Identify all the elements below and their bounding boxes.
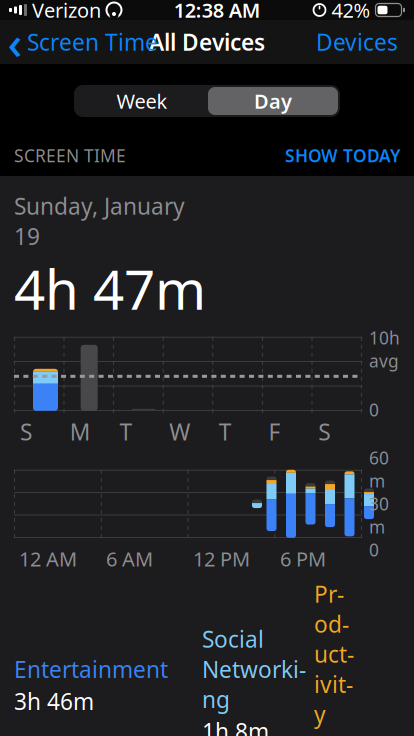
staticText: 4h 47m (14, 252, 206, 325)
staticText: SCREEN TIME (14, 144, 126, 167)
staticText: Sunday, January 19 (14, 191, 185, 251)
staticText: T (219, 417, 232, 447)
staticText: Devices (316, 27, 398, 57)
staticText: Entertainment (14, 654, 168, 684)
staticText: 60m (369, 446, 389, 492)
staticText: Social Networking (202, 624, 306, 714)
staticText: Verizon (32, 0, 101, 23)
staticText: Screen Time (27, 27, 158, 57)
button[interactable]: Week (76, 87, 208, 115)
staticText: Day (254, 88, 292, 114)
staticText: M (70, 417, 91, 447)
button[interactable]: SHOW TODAY (285, 144, 400, 167)
staticText: 6 PM (280, 545, 326, 572)
staticText: avg (369, 349, 399, 372)
staticText: SHOW TODAY (285, 144, 400, 167)
staticText: Week (116, 88, 167, 114)
staticText: 12 AM (19, 545, 77, 572)
staticText: Productivity (314, 579, 354, 729)
staticText: 0 (369, 538, 379, 561)
button[interactable]: Devices (316, 18, 414, 66)
staticText: F (269, 417, 281, 447)
staticText: All Devices (149, 27, 265, 57)
staticText: 3h 46m (14, 686, 94, 716)
staticText: 12:38 AM (174, 0, 261, 23)
staticText: S (20, 417, 32, 447)
button[interactable]: Day (208, 87, 338, 115)
staticText: 30m (369, 492, 389, 538)
staticText: 6 AM (106, 545, 153, 572)
staticText: S (318, 417, 330, 447)
staticText: T (119, 417, 132, 447)
staticText: W (169, 417, 190, 447)
staticText: 10h (369, 326, 400, 349)
button[interactable]: ‹ (0, 18, 158, 66)
staticText: 42% (331, 0, 370, 23)
staticText: ‹ (7, 12, 22, 72)
staticText: 0 (369, 398, 379, 421)
staticText: 12 PM (193, 545, 250, 572)
staticText: 1h 8m (202, 716, 269, 736)
